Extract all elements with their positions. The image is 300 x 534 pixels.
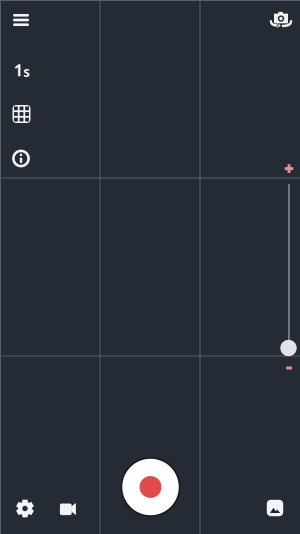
button[interactable]: Interval 1 second	[7, 59, 37, 81]
button[interactable]: Info	[0, 138, 42, 178]
staticText: 1	[14, 59, 23, 81]
button[interactable]: Menu	[0, 0, 42, 40]
button[interactable]: Zoom level	[276, 336, 300, 360]
staticText: s	[23, 63, 30, 81]
button[interactable]: Zoom in	[279, 159, 299, 179]
button[interactable]: Grid	[0, 94, 42, 134]
button[interactable]: Zoom out	[280, 360, 298, 376]
button[interactable]: Record	[118, 455, 182, 519]
button[interactable]: Settings	[5, 488, 45, 528]
button[interactable]: Video mode	[49, 489, 89, 529]
button[interactable]: Switch camera	[260, 0, 300, 40]
button[interactable]: Gallery	[255, 488, 295, 528]
